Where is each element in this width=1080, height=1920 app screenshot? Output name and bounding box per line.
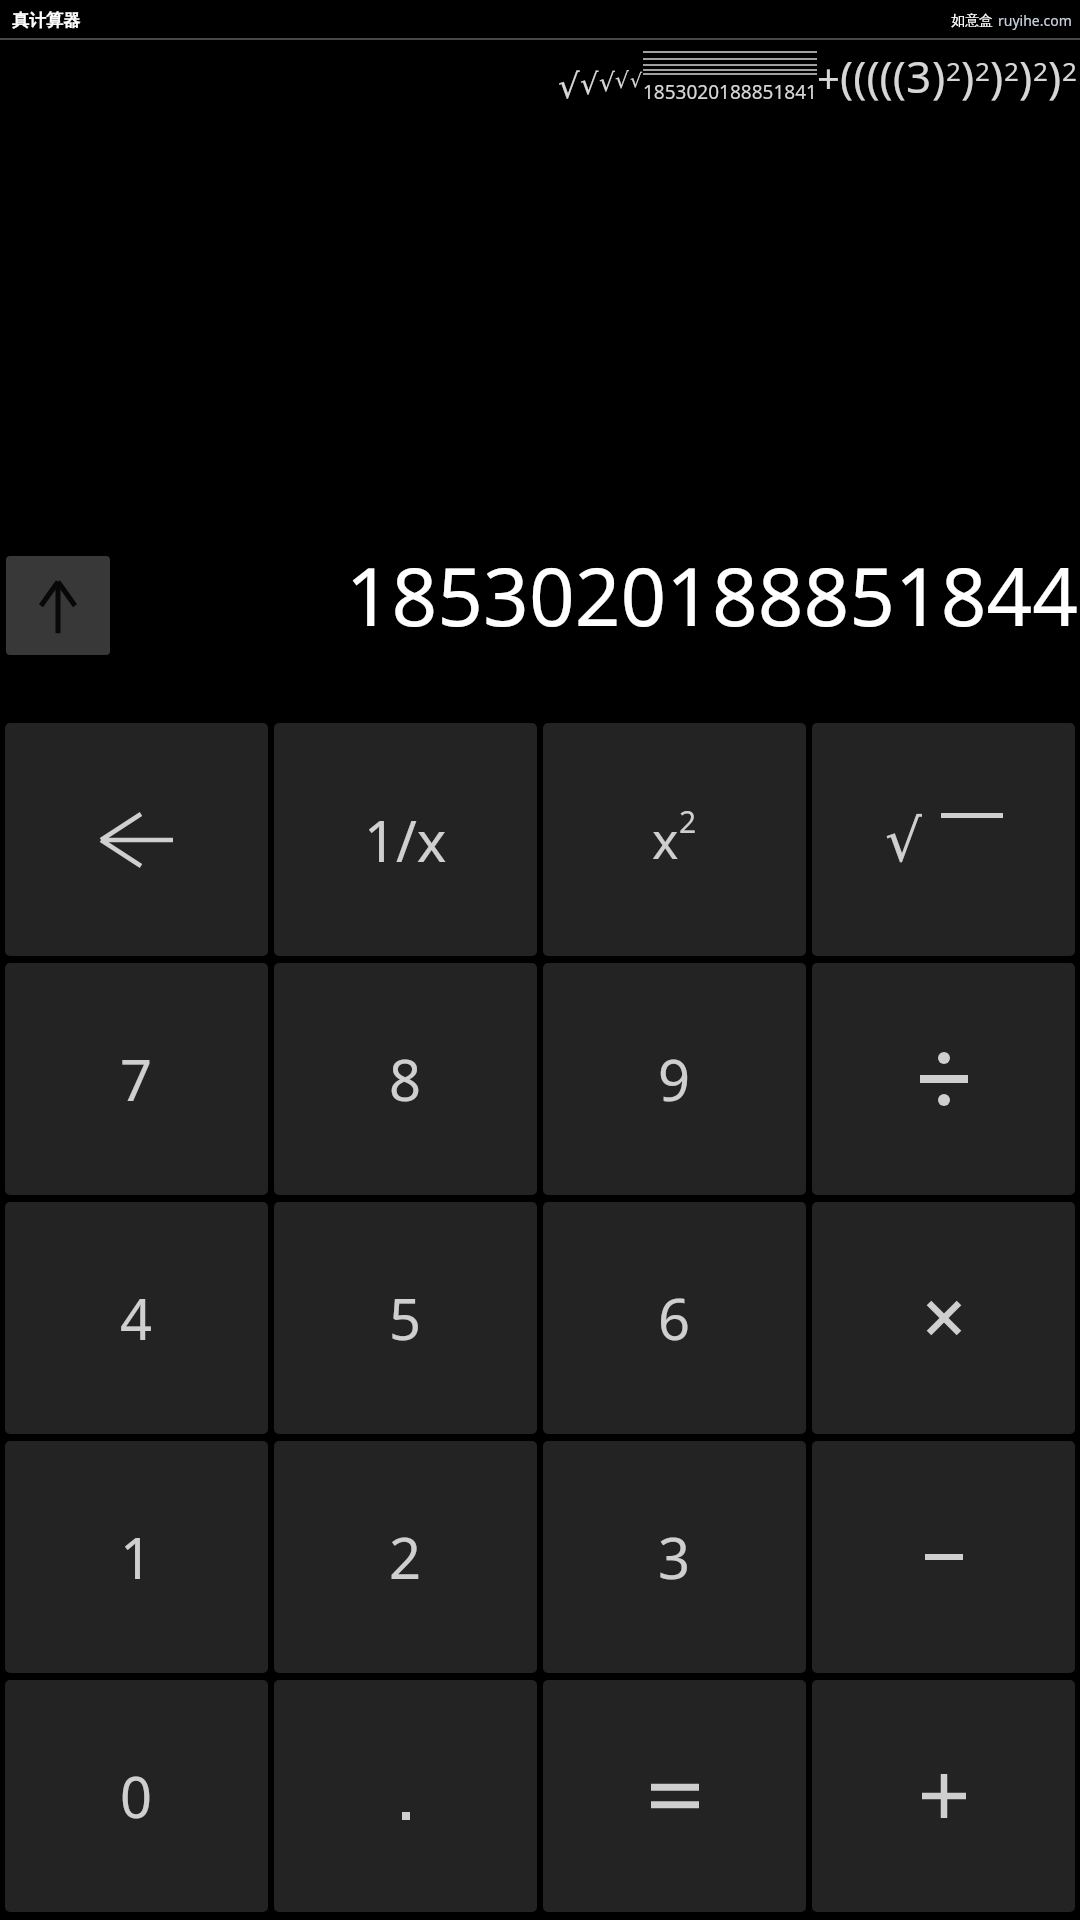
staticText: √ — [580, 67, 599, 101]
button[interactable]: Square — [543, 723, 806, 956]
staticText: 1 — [120, 1519, 153, 1595]
button[interactable]: 7 — [5, 963, 268, 1195]
staticText: √ — [599, 68, 615, 97]
button[interactable]: 0 — [5, 1680, 268, 1912]
button[interactable]: Backspace — [5, 723, 268, 956]
staticText: 2 — [679, 801, 697, 842]
staticText: + — [817, 50, 840, 104]
staticText: ) — [990, 46, 1004, 106]
staticText: √ — [558, 66, 580, 106]
staticText: 1853020188851841 — [643, 79, 817, 105]
staticText: 7 — [120, 1041, 153, 1117]
button[interactable]: 3 — [543, 1441, 806, 1673]
staticText: ) — [1019, 46, 1033, 106]
staticText: ruyihe.com — [998, 11, 1072, 30]
button[interactable]: Equals — [543, 1680, 806, 1912]
staticText: 3 — [658, 1519, 691, 1595]
staticText: ) — [932, 46, 946, 106]
staticText: 0 — [120, 1758, 153, 1834]
button[interactable]: 1/x — [274, 723, 537, 956]
staticText: 2 — [975, 53, 990, 88]
staticText: ((((( — [840, 46, 906, 106]
staticText: x — [652, 806, 679, 874]
button[interactable]: 9 — [543, 963, 806, 1195]
button[interactable]: Divide — [812, 963, 1075, 1195]
staticText: 4 — [120, 1280, 153, 1356]
button[interactable]: Minus — [812, 1441, 1075, 1673]
staticText: 1/x — [364, 802, 447, 878]
button[interactable]: Multiply — [812, 1202, 1075, 1434]
staticText: ) — [1048, 46, 1062, 106]
button[interactable]: 2 — [274, 1441, 537, 1673]
button[interactable]: Plus — [812, 1680, 1075, 1912]
staticText: 2 — [946, 53, 961, 88]
staticText: √ — [630, 69, 643, 91]
staticText: 9 — [658, 1041, 691, 1117]
staticText: 2 — [1062, 53, 1077, 88]
button[interactable]: 5 — [274, 1202, 537, 1434]
staticText: 8 — [389, 1041, 422, 1117]
staticText: 2 — [1004, 53, 1019, 88]
staticText: 2 — [1033, 53, 1048, 88]
staticText: √ — [615, 68, 630, 94]
button[interactable]: 8 — [274, 963, 537, 1195]
staticText: 真计算器 — [12, 10, 80, 31]
button[interactable]: Decimal point — [274, 1680, 537, 1912]
staticText: ) — [961, 46, 975, 106]
staticText: 如意盒 — [951, 12, 993, 30]
button[interactable]: 6 — [543, 1202, 806, 1434]
staticText: 6 — [658, 1280, 691, 1356]
button[interactable]: 4 — [5, 1202, 268, 1434]
button[interactable]: 1 — [5, 1441, 268, 1673]
staticText: 2 — [389, 1519, 422, 1595]
button[interactable]: Square root — [812, 723, 1075, 956]
staticText: 5 — [389, 1280, 422, 1356]
staticText: 1853020188851844 — [0, 540, 1078, 649]
button[interactable]: Scroll up — [6, 556, 110, 655]
staticText: √ — [885, 807, 922, 873]
staticText: 3 — [906, 46, 932, 106]
